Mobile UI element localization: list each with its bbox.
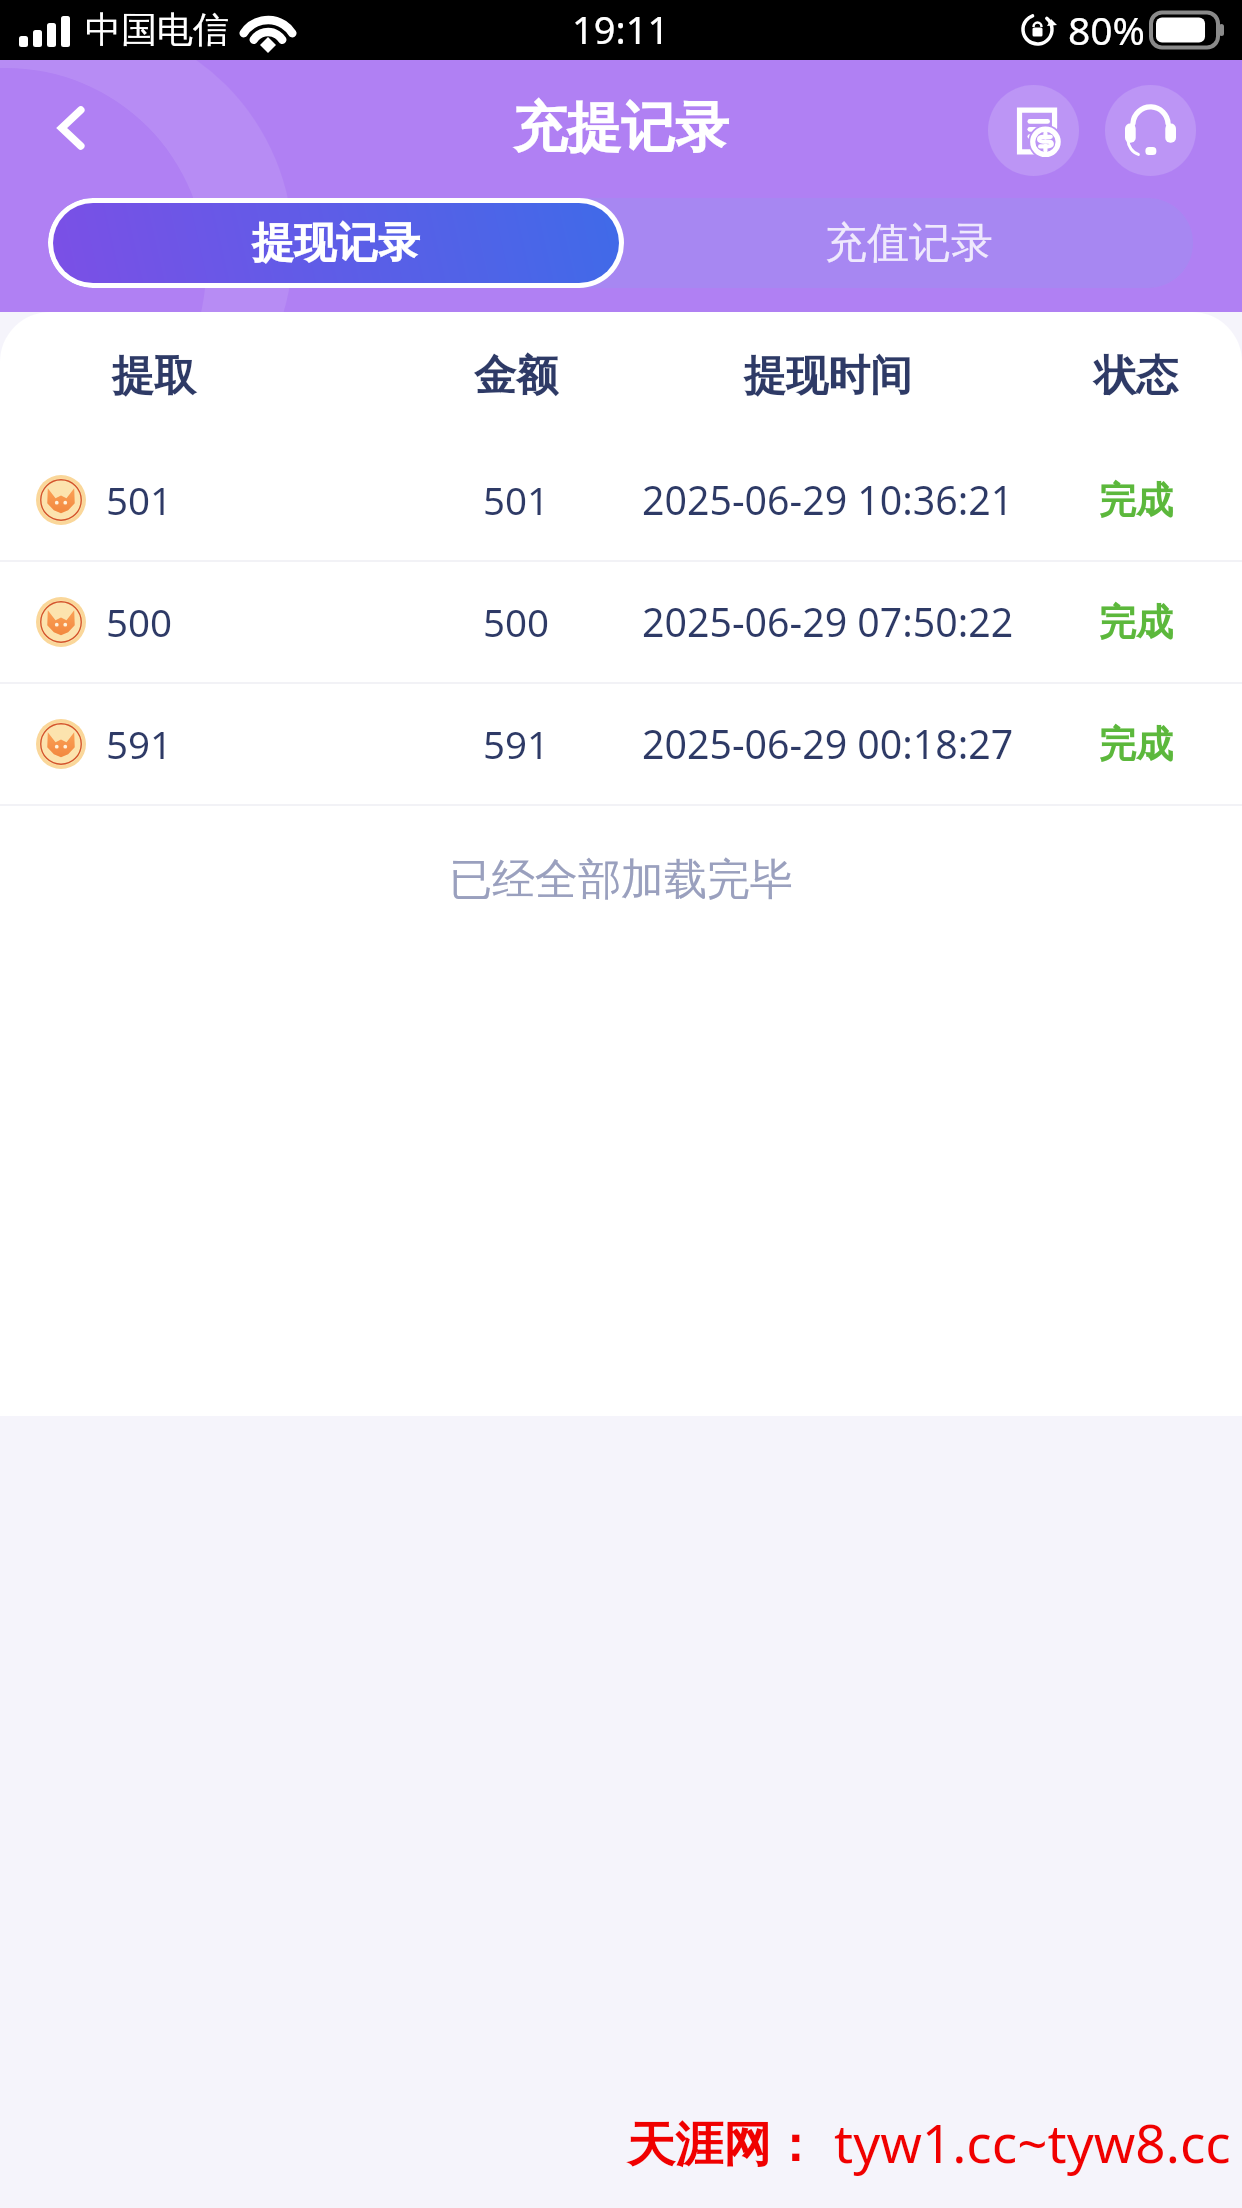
staticText: 501 [106, 474, 173, 526]
staticText: 完成 [1099, 477, 1173, 524]
staticText: 500 [483, 596, 550, 648]
staticText: 19:11 [572, 3, 670, 55]
staticText: 完成 [1099, 599, 1173, 646]
staticText: 501 [483, 474, 550, 526]
staticText: 提现时间 [744, 350, 912, 403]
staticText: 中国电信 [85, 7, 229, 52]
button[interactable]: 501 [0, 440, 1242, 560]
staticText: 80% [1068, 3, 1146, 56]
staticText: 状态 [1094, 350, 1178, 403]
staticText: 充值记录 [825, 217, 993, 270]
button[interactable]: Customer service [1105, 85, 1196, 176]
button[interactable]: Back [22, 80, 122, 180]
button[interactable]: 提现记录 [53, 203, 619, 283]
staticText: 2025-06-29 10:36:21 [642, 473, 1014, 527]
staticText: 2025-06-29 07:50:22 [642, 595, 1014, 649]
staticText: 天涯网： [627, 2115, 819, 2175]
staticText: tyw1.cc~tyw8.cc [834, 2106, 1231, 2178]
staticText: 591 [106, 718, 173, 770]
button[interactable]: Bill records [988, 85, 1079, 176]
button[interactable]: 充值记录 [624, 198, 1193, 288]
staticText: 提现记录 [252, 217, 420, 270]
staticText: 2025-06-29 00:18:27 [642, 717, 1014, 771]
staticText: 已经全部加载完毕 [449, 853, 793, 907]
button[interactable]: 591 [0, 684, 1242, 804]
staticText: 充提记录 [513, 94, 729, 162]
staticText: 完成 [1099, 721, 1173, 768]
staticText: 提取 [112, 350, 196, 403]
button[interactable]: 500 [0, 562, 1242, 682]
staticText: 500 [106, 596, 173, 648]
staticText: 591 [483, 718, 550, 770]
staticText: 金额 [474, 350, 558, 403]
